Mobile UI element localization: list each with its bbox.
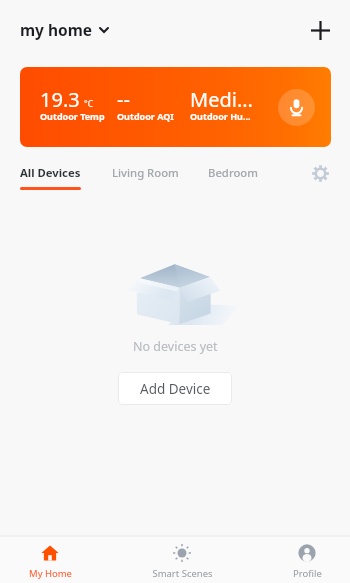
button[interactable]: Voice assistant bbox=[278, 89, 315, 126]
staticText: -- bbox=[117, 86, 130, 113]
staticText: All Devices bbox=[20, 165, 81, 180]
staticText: My Home bbox=[29, 567, 72, 580]
staticText: No devices yet bbox=[133, 338, 218, 355]
staticText: °C bbox=[84, 98, 94, 110]
staticText: Bedroom bbox=[208, 165, 258, 180]
button[interactable]: My Home bbox=[12, 535, 88, 583]
button[interactable]: 19.3 bbox=[20, 67, 331, 147]
staticText: my home bbox=[20, 19, 93, 40]
button[interactable]: Add Device bbox=[118, 372, 232, 405]
staticText: Living Room bbox=[112, 165, 179, 180]
staticText: Smart Scenes bbox=[152, 567, 213, 580]
button[interactable]: All Devices bbox=[20, 164, 81, 190]
button[interactable]: Living Room bbox=[112, 164, 179, 190]
button[interactable]: Smart Scenes bbox=[144, 535, 220, 583]
staticText: Outdoor Temp bbox=[40, 110, 105, 122]
staticText: 19.3 bbox=[40, 86, 80, 113]
button[interactable]: Add device bbox=[302, 12, 338, 48]
staticText: Add Device bbox=[140, 380, 211, 398]
staticText: Profile bbox=[293, 567, 322, 580]
staticText: Outdoor AQI bbox=[117, 110, 174, 122]
button[interactable]: my home bbox=[17, 15, 112, 44]
staticText: Outdoor Hu... bbox=[190, 110, 251, 122]
button[interactable]: Bedroom bbox=[208, 164, 258, 190]
button[interactable]: Profile bbox=[269, 535, 345, 583]
staticText: Medi... bbox=[190, 86, 253, 113]
button[interactable]: Settings bbox=[305, 158, 335, 188]
